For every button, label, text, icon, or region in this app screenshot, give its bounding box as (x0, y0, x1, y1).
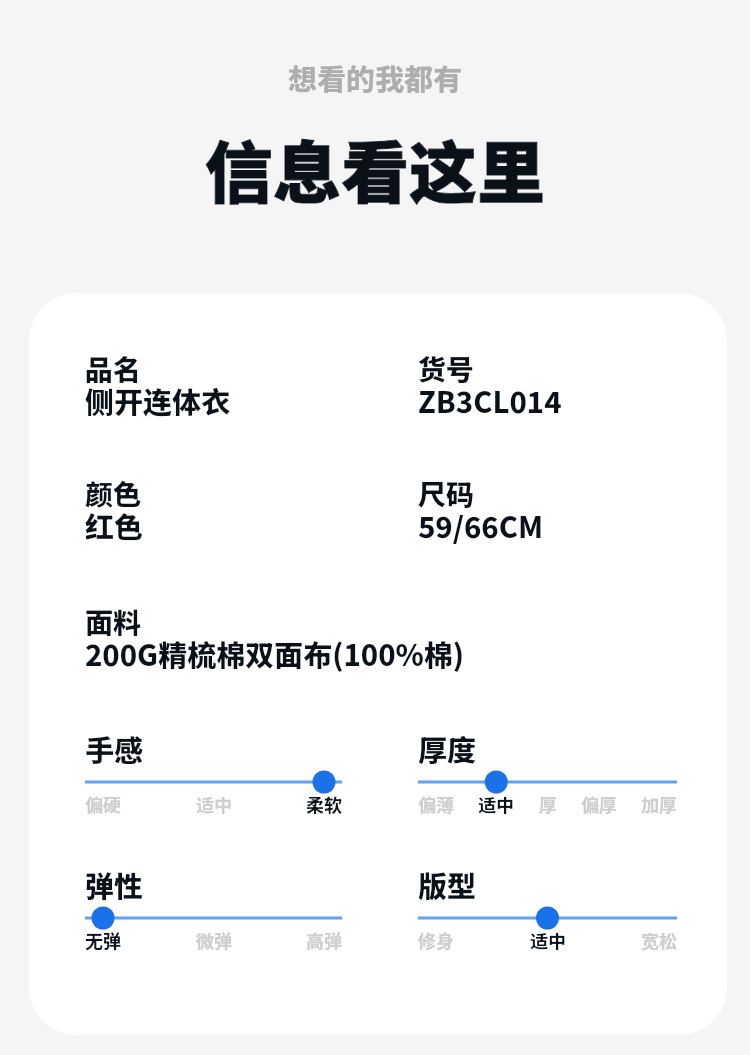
staticText: 想看的我都有 (288, 56, 463, 98)
staticText: 弹性 (85, 863, 144, 905)
staticText: 信息看这里 (205, 119, 546, 217)
button[interactable]: 面料 (85, 601, 465, 684)
staticText: 柔软 (306, 791, 342, 817)
staticText: 侧开连体衣 (85, 379, 231, 421)
staticText: 适中 (478, 791, 514, 817)
staticText: 修身 (418, 927, 454, 953)
staticText: 信息看这里 (205, 119, 546, 217)
staticText: 面料 (85, 601, 142, 642)
staticText: 59/66CM (418, 504, 543, 546)
staticText: 品名 (85, 348, 142, 389)
button[interactable]: 尺码 (418, 473, 543, 556)
staticText: 微弹 (196, 927, 232, 953)
staticText: 适中 (530, 927, 566, 953)
staticText: 偏厚 (581, 791, 617, 817)
staticText: 厚 (539, 791, 557, 817)
staticText: 厚度 (418, 727, 477, 769)
button[interactable]: 厚度 (418, 727, 677, 820)
staticText: ZB3CL014 (418, 379, 562, 421)
staticText: 颜色 (85, 473, 142, 514)
staticText: 版型 (418, 863, 477, 905)
staticText: 尺码 (418, 473, 475, 514)
button[interactable]: 颜色 (85, 473, 418, 556)
button[interactable]: 货号 (418, 348, 562, 431)
staticText: 偏硬 (85, 791, 121, 817)
staticText: 红色 (85, 504, 144, 546)
staticText: 偏薄 (418, 791, 454, 817)
staticText: 无弹 (85, 927, 121, 953)
staticText: 适中 (196, 791, 232, 817)
staticText: 加厚 (641, 791, 677, 817)
button[interactable]: 品名 (85, 348, 418, 431)
staticText: 200G精梳棉双面布(100%棉) (85, 632, 465, 674)
button[interactable]: 版型 (418, 863, 677, 956)
button[interactable]: 弹性 (85, 863, 342, 956)
staticText: 高弹 (306, 927, 342, 953)
staticText: 手感 (85, 727, 144, 769)
staticText: 宽松 (641, 927, 677, 953)
button[interactable]: 手感 (85, 727, 342, 820)
staticText: 货号 (418, 348, 475, 389)
